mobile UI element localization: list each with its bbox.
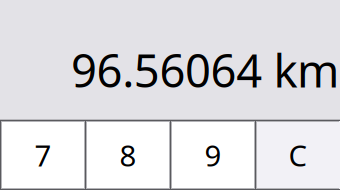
button[interactable]: 7 bbox=[1, 121, 85, 189]
staticText: 7 bbox=[34, 135, 51, 174]
button[interactable]: 9 bbox=[171, 121, 255, 189]
button[interactable]: Clear bbox=[256, 121, 340, 189]
staticText: C bbox=[288, 135, 307, 174]
staticText: 9 bbox=[204, 135, 221, 174]
staticText: 8 bbox=[119, 135, 136, 174]
button[interactable]: 8 bbox=[86, 121, 170, 189]
staticText: 96.56064 km bbox=[71, 40, 339, 100]
